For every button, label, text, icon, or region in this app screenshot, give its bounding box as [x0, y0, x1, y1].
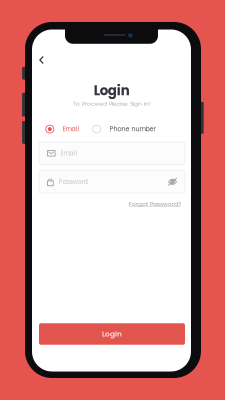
staticText: To Proceed Please Sign in!: [73, 100, 151, 108]
staticText: Password: [59, 177, 88, 186]
staticText: Email: [62, 125, 79, 133]
button[interactable]: Login: [39, 323, 185, 345]
staticText: Forgot Password?: [129, 200, 181, 208]
button[interactable]: Forgot Password?: [129, 200, 181, 208]
button[interactable]: Show password: [168, 179, 177, 184]
staticText: Phone number: [109, 125, 155, 133]
button[interactable]: Back: [33, 51, 50, 68]
staticText: Login: [94, 81, 130, 100]
button[interactable]: Phone number: [92, 123, 155, 135]
staticText: Login: [102, 329, 122, 339]
staticText: Email: [61, 149, 78, 158]
button[interactable]: Email: [45, 123, 79, 135]
